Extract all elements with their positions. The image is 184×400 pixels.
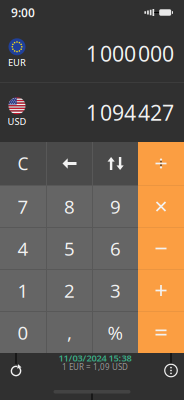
button[interactable]: 4	[0, 228, 46, 269]
staticText: 4	[17, 236, 28, 261]
staticText: 0	[17, 320, 28, 345]
staticText: 1 094 427	[86, 98, 174, 127]
staticText: ,	[67, 320, 72, 345]
staticText: 11/03/2024 15:38	[58, 352, 131, 364]
button[interactable]: 2	[47, 270, 92, 311]
button[interactable]: Multiply	[138, 186, 184, 227]
staticText: 6	[110, 236, 121, 261]
staticText: 5	[64, 236, 75, 261]
button[interactable]: 3	[93, 270, 138, 311]
staticText: 8	[64, 194, 75, 219]
button[interactable]: USD	[0, 83, 184, 142]
staticText: %	[107, 320, 123, 345]
staticText: USD	[7, 115, 26, 128]
staticText: 2	[64, 278, 75, 303]
button[interactable]: 1	[0, 270, 46, 311]
button[interactable]: EUR	[0, 25, 184, 82]
button[interactable]: Add	[138, 270, 184, 311]
staticText: 9	[110, 194, 121, 219]
button[interactable]: 7	[0, 186, 46, 227]
staticText: 9:00	[11, 4, 35, 20]
staticText: 3	[110, 278, 121, 303]
button[interactable]: %	[93, 312, 138, 353]
button[interactable]: 8	[47, 186, 92, 227]
button[interactable]: Subtract	[138, 228, 184, 269]
button[interactable]: Backspace	[47, 142, 92, 185]
staticText: 7	[17, 194, 28, 219]
button[interactable]: 5	[47, 228, 92, 269]
staticText: 1 000 000	[86, 39, 174, 68]
button[interactable]: Refresh rates	[0, 353, 32, 383]
button[interactable]: Equals	[138, 312, 184, 353]
button[interactable]: ,	[47, 312, 92, 353]
staticText: C	[17, 152, 28, 175]
button[interactable]: 9	[93, 186, 138, 227]
button[interactable]: 0	[0, 312, 46, 353]
button[interactable]: More options	[158, 353, 184, 383]
button[interactable]: 6	[93, 228, 138, 269]
staticText: EUR	[8, 56, 26, 69]
button[interactable]: Divide	[138, 142, 184, 185]
staticText: 1 EUR = 1,09 USD	[62, 362, 128, 372]
button[interactable]: C	[0, 142, 46, 185]
staticText: 1	[17, 278, 28, 303]
button[interactable]: Swap currencies	[93, 142, 138, 185]
